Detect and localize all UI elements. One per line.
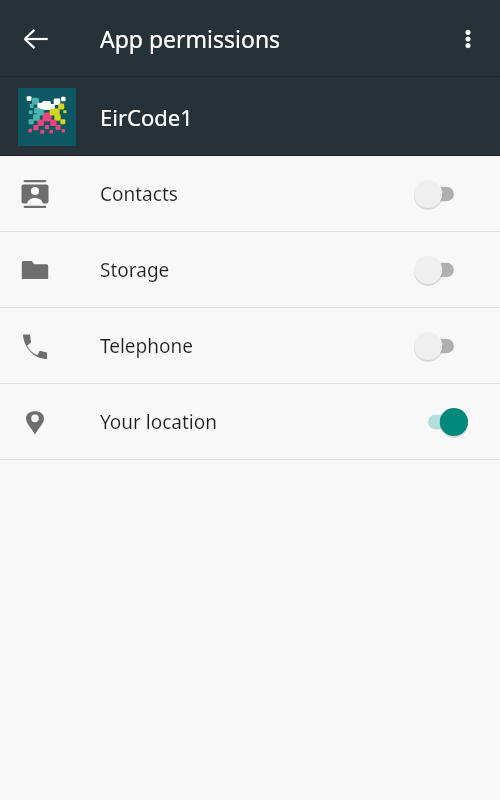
button[interactable]: EirCode1 — [0, 77, 500, 156]
button[interactable]: Off — [414, 255, 468, 285]
button[interactable]: Your location — [0, 384, 500, 459]
staticText: Contacts — [100, 181, 178, 207]
button[interactable]: Back — [8, 11, 64, 67]
staticText: Telephone — [100, 333, 193, 359]
button[interactable]: More options — [442, 13, 494, 65]
button[interactable]: On — [414, 407, 468, 437]
button[interactable]: Off — [414, 179, 468, 209]
button[interactable]: Contacts — [0, 156, 500, 231]
staticText: Your location — [100, 409, 218, 435]
staticText: Storage — [100, 257, 170, 283]
staticText: EirCode1 — [100, 102, 193, 132]
button[interactable]: Off — [414, 331, 468, 361]
button[interactable]: Telephone — [0, 308, 500, 383]
button[interactable]: Storage — [0, 232, 500, 307]
staticText: App permissions — [100, 23, 281, 54]
